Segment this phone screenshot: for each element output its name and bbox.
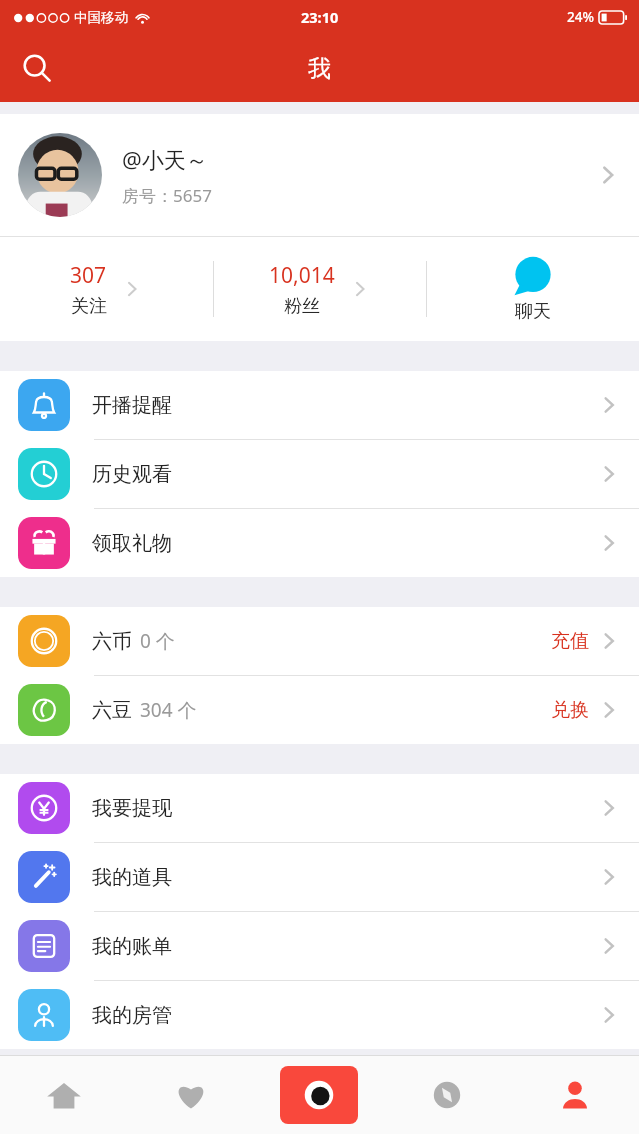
button[interactable]: 六币 — [0, 607, 639, 675]
button[interactable]: Live — [280, 1066, 358, 1124]
button[interactable]: 六豆 — [0, 676, 639, 744]
button[interactable]: 我的房管 — [0, 981, 639, 1049]
staticText: 304 个 — [140, 697, 197, 723]
staticText: 0 个 — [140, 628, 175, 654]
button[interactable]: 10,014 — [214, 237, 426, 341]
button[interactable]: 307 — [0, 237, 213, 341]
button[interactable]: 领取礼物 — [0, 509, 639, 577]
button[interactable]: 我的道具 — [0, 843, 639, 911]
staticText: 房号：5657 — [122, 184, 212, 207]
staticText: 我 — [308, 54, 331, 83]
staticText: 307 — [70, 261, 107, 290]
button[interactable]: 我要提现 — [0, 774, 639, 842]
staticText: 我的账单 — [92, 934, 172, 959]
staticText: 24% — [567, 8, 594, 26]
button[interactable]: Search — [12, 43, 62, 93]
staticText: 充值 — [551, 629, 589, 653]
button[interactable]: @小天～ — [0, 114, 639, 236]
staticText: 10,014 — [269, 261, 335, 290]
button[interactable]: 聊天 — [427, 237, 639, 341]
staticText: 六豆 — [92, 698, 132, 723]
staticText: 23:10 — [301, 7, 339, 27]
button[interactable]: Home — [0, 1056, 127, 1134]
staticText: 我的道具 — [92, 865, 172, 890]
staticText: 六币 — [92, 629, 132, 654]
staticText: 关注 — [71, 295, 107, 318]
staticText: 兑换 — [551, 698, 589, 722]
staticText: 聊天 — [515, 300, 551, 323]
button[interactable]: Likes — [127, 1056, 255, 1134]
button[interactable]: 历史观看 — [0, 440, 639, 508]
staticText: 中国移动 — [74, 9, 128, 26]
staticText: 领取礼物 — [92, 531, 172, 556]
staticText: 我要提现 — [92, 796, 172, 821]
button[interactable]: 开播提醒 — [0, 371, 639, 439]
staticText: 我的房管 — [92, 1003, 172, 1028]
button[interactable]: Me — [511, 1056, 639, 1134]
button[interactable]: Discover — [383, 1056, 511, 1134]
staticText: 历史观看 — [92, 462, 172, 487]
staticText: 开播提醒 — [92, 393, 172, 418]
staticText: @小天～ — [122, 144, 208, 174]
button[interactable]: 我的账单 — [0, 912, 639, 980]
staticText: 粉丝 — [284, 295, 320, 318]
